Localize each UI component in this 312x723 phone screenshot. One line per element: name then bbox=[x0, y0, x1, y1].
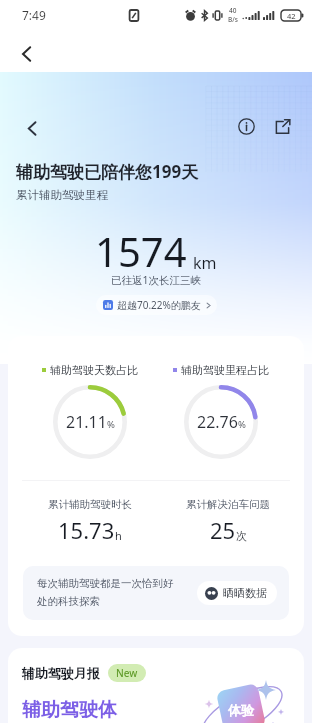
button[interactable]: Back bbox=[18, 114, 46, 142]
staticText: 15.73 bbox=[58, 515, 115, 545]
staticText: 22.76 bbox=[197, 411, 238, 433]
staticText: 体验 bbox=[228, 702, 254, 718]
staticText: B/s bbox=[228, 15, 238, 24]
staticText: 已往返1次长江三峡 bbox=[111, 273, 202, 287]
staticText: 辅助驾驶已陪伴您199天 bbox=[16, 160, 199, 183]
button[interactable]: Info bbox=[232, 112, 260, 140]
button[interactable]: 超越70.22%的鹏友 bbox=[96, 295, 217, 315]
staticText: 累计辅助驾驶里程 bbox=[16, 188, 108, 202]
staticText: 1574 bbox=[95, 224, 187, 278]
staticText: 每次辅助驾驶都是一次恰到好 处的科技探索 bbox=[37, 577, 197, 609]
staticText: 超越70.22%的鹏友 bbox=[117, 298, 201, 312]
button[interactable]: Share bbox=[268, 112, 296, 140]
staticText: 25 bbox=[210, 515, 236, 545]
staticText: km bbox=[193, 252, 217, 274]
button[interactable]: Back bbox=[12, 39, 42, 69]
staticText: % bbox=[238, 418, 246, 431]
staticText: 辅助驾驶里程占比 bbox=[181, 363, 269, 377]
button[interactable]: 辅助驾驶月报 bbox=[8, 648, 304, 723]
staticText: 21.11 bbox=[66, 411, 107, 433]
staticText: 累计解决泊车问题 bbox=[186, 498, 270, 511]
staticText: 累计辅助驾驶时长 bbox=[48, 498, 132, 511]
staticText: 7:49 bbox=[22, 7, 46, 23]
staticText: % bbox=[107, 418, 115, 431]
staticText: 42 bbox=[287, 11, 296, 21]
staticText: h bbox=[115, 528, 122, 543]
staticText: 次 bbox=[236, 529, 247, 543]
staticText: 晒晒数据 bbox=[223, 586, 267, 600]
staticText: New bbox=[116, 666, 138, 680]
staticText: 辅助驾驶天数占比 bbox=[50, 363, 138, 377]
button[interactable]: 晒晒数据 bbox=[197, 581, 277, 605]
staticText: 辅助驾驶体 bbox=[22, 698, 117, 722]
staticText: 40 bbox=[229, 6, 237, 15]
staticText: 辅助驾驶月报 bbox=[22, 665, 100, 681]
